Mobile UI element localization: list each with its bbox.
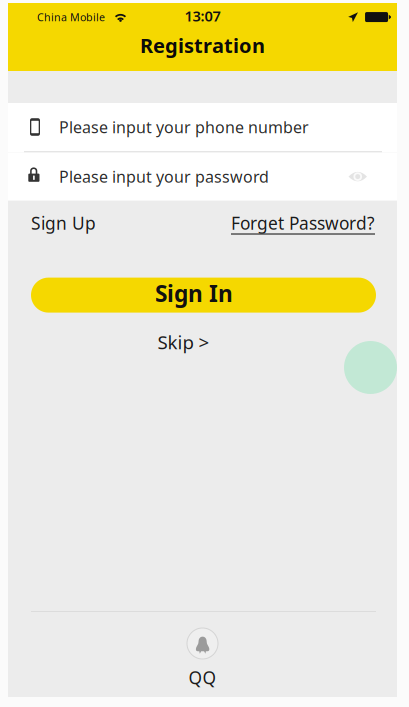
button[interactable]: Skip > — [157, 330, 209, 354]
staticText: Registration — [140, 32, 265, 59]
button[interactable]: Please input your phone number — [8, 103, 397, 151]
button[interactable]: Please input your password — [8, 153, 397, 201]
staticText: Please input your phone number — [59, 116, 309, 138]
button[interactable]: QQ — [187, 611, 218, 689]
staticText: Sign Up — [31, 212, 96, 235]
staticText: Forget Password? — [231, 212, 375, 235]
button[interactable]: Sign In — [31, 278, 376, 313]
button[interactable]: Sign Up — [31, 212, 96, 235]
staticText: QQ — [188, 666, 216, 689]
button[interactable]: Forget Password? — [231, 212, 375, 235]
staticText: Sign In — [155, 278, 233, 308]
staticText: 13:07 — [184, 6, 220, 25]
staticText: Skip > — [157, 330, 209, 354]
staticText: Please input your password — [59, 166, 269, 187]
staticText: China Mobile — [37, 10, 105, 24]
